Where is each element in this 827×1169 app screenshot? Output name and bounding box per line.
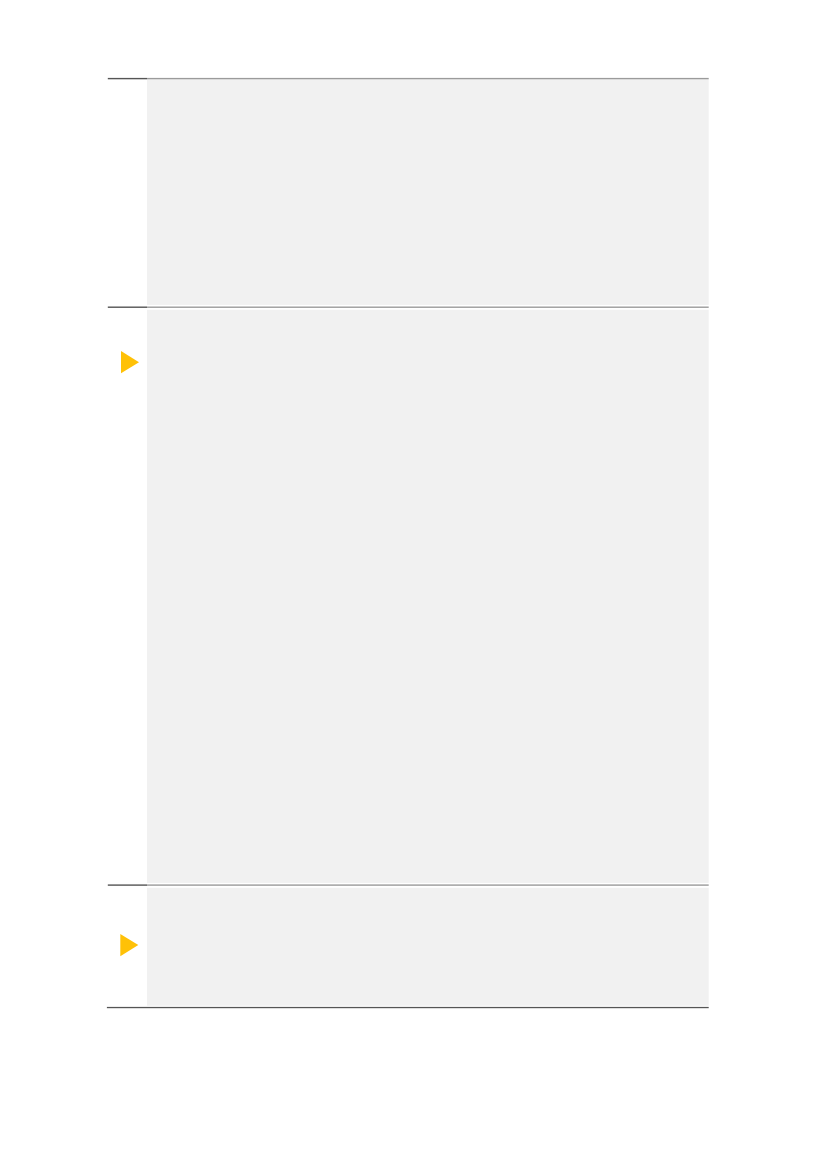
button[interactable]: Collapse Section 2 bbox=[112, 345, 147, 379]
button[interactable]: Collapse Section 3 bbox=[111, 928, 147, 962]
